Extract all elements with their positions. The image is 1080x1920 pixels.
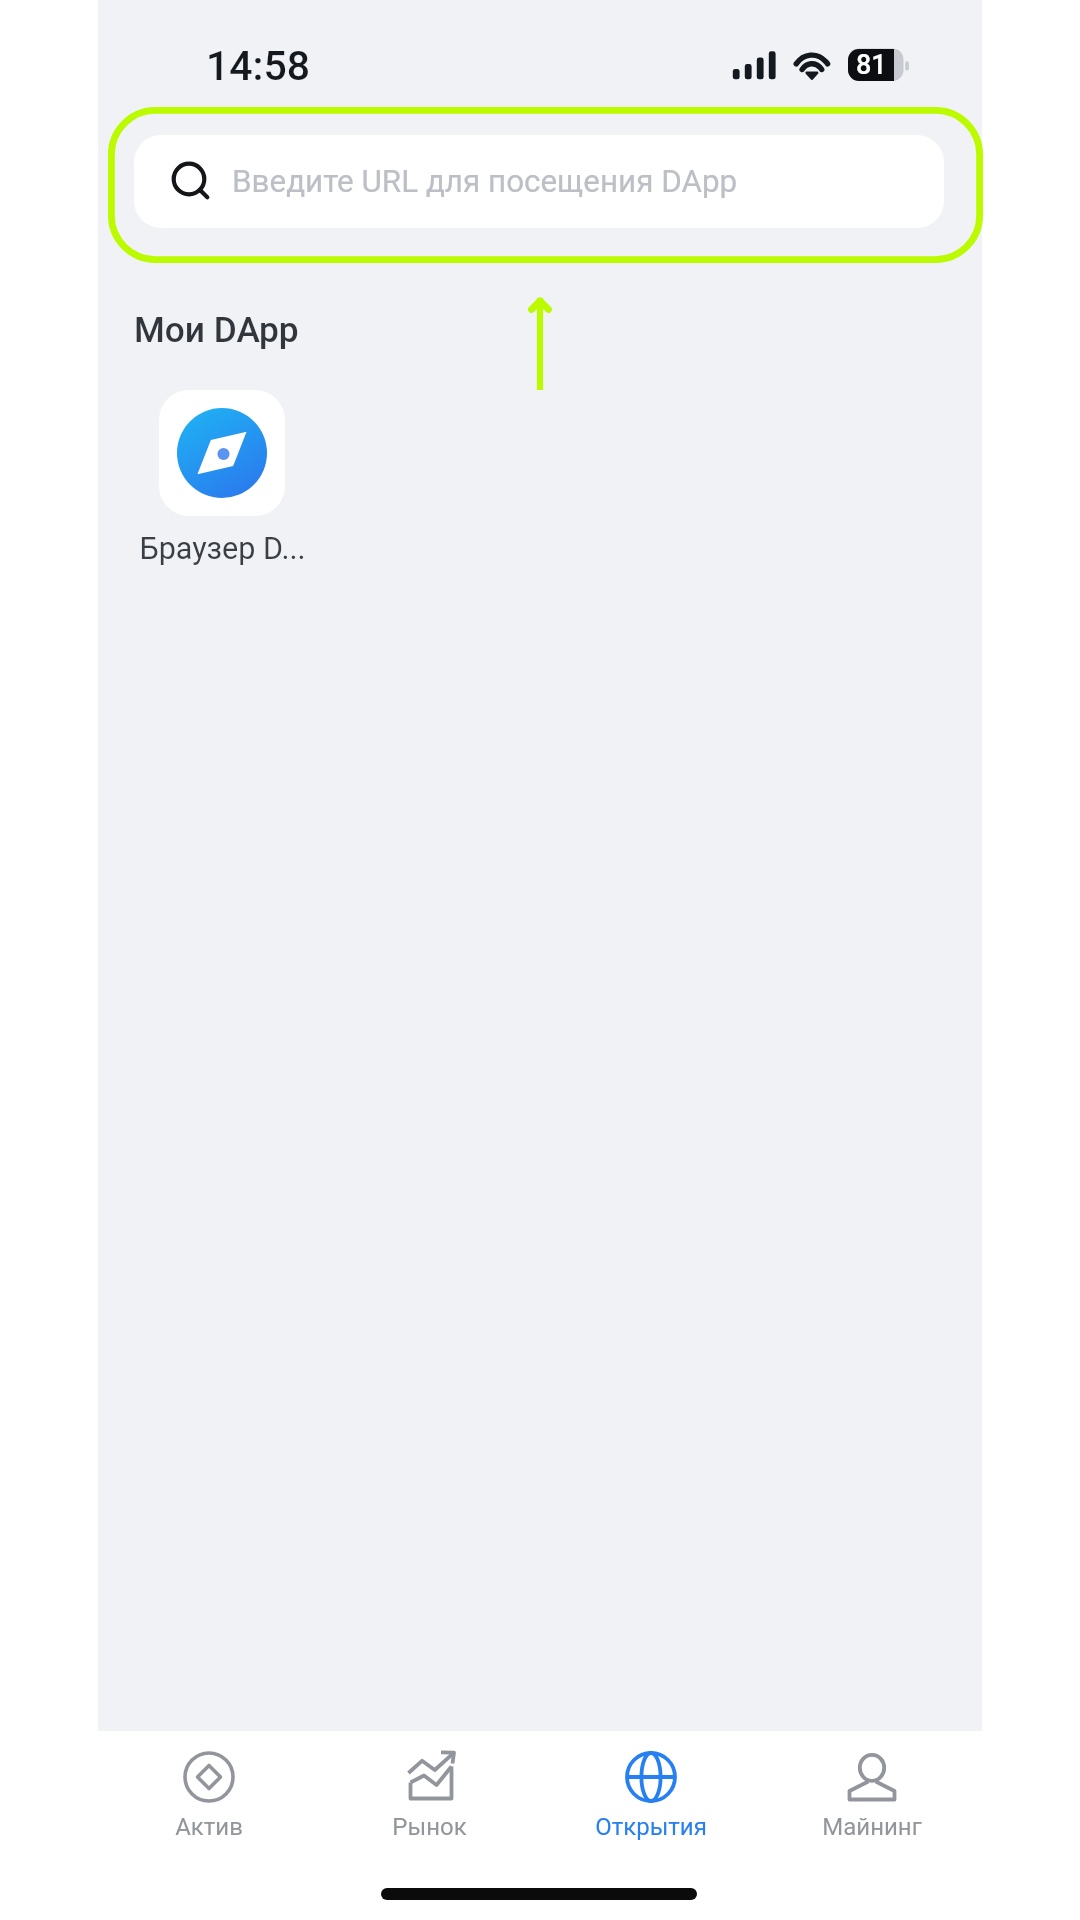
button[interactable]: Введите URL для посещения DApp xyxy=(134,135,944,228)
button[interactable]: Майнинг xyxy=(761,1714,982,1844)
staticText: Рынок xyxy=(392,1813,467,1841)
other: Актив xyxy=(183,1751,235,1803)
other: Рынок xyxy=(404,1751,456,1803)
button[interactable]: Актив xyxy=(98,1714,319,1844)
other: Майнинг xyxy=(846,1751,898,1803)
staticText: Браузер D... xyxy=(139,531,306,567)
button[interactable]: Браузер DApp xyxy=(118,390,326,567)
staticText: Актив xyxy=(175,1813,243,1841)
button[interactable]: Открытия xyxy=(540,1714,761,1844)
staticText: Мои DApp xyxy=(134,309,299,350)
staticText: 81 xyxy=(856,49,887,81)
staticText: 14:58 xyxy=(206,42,311,90)
staticText: Введите URL для посещения DApp xyxy=(232,163,738,200)
other: Открытия xyxy=(625,1751,677,1803)
staticText: Майнинг xyxy=(822,1813,922,1841)
staticText: Открытия xyxy=(595,1813,707,1841)
button[interactable]: Рынок xyxy=(319,1714,540,1844)
